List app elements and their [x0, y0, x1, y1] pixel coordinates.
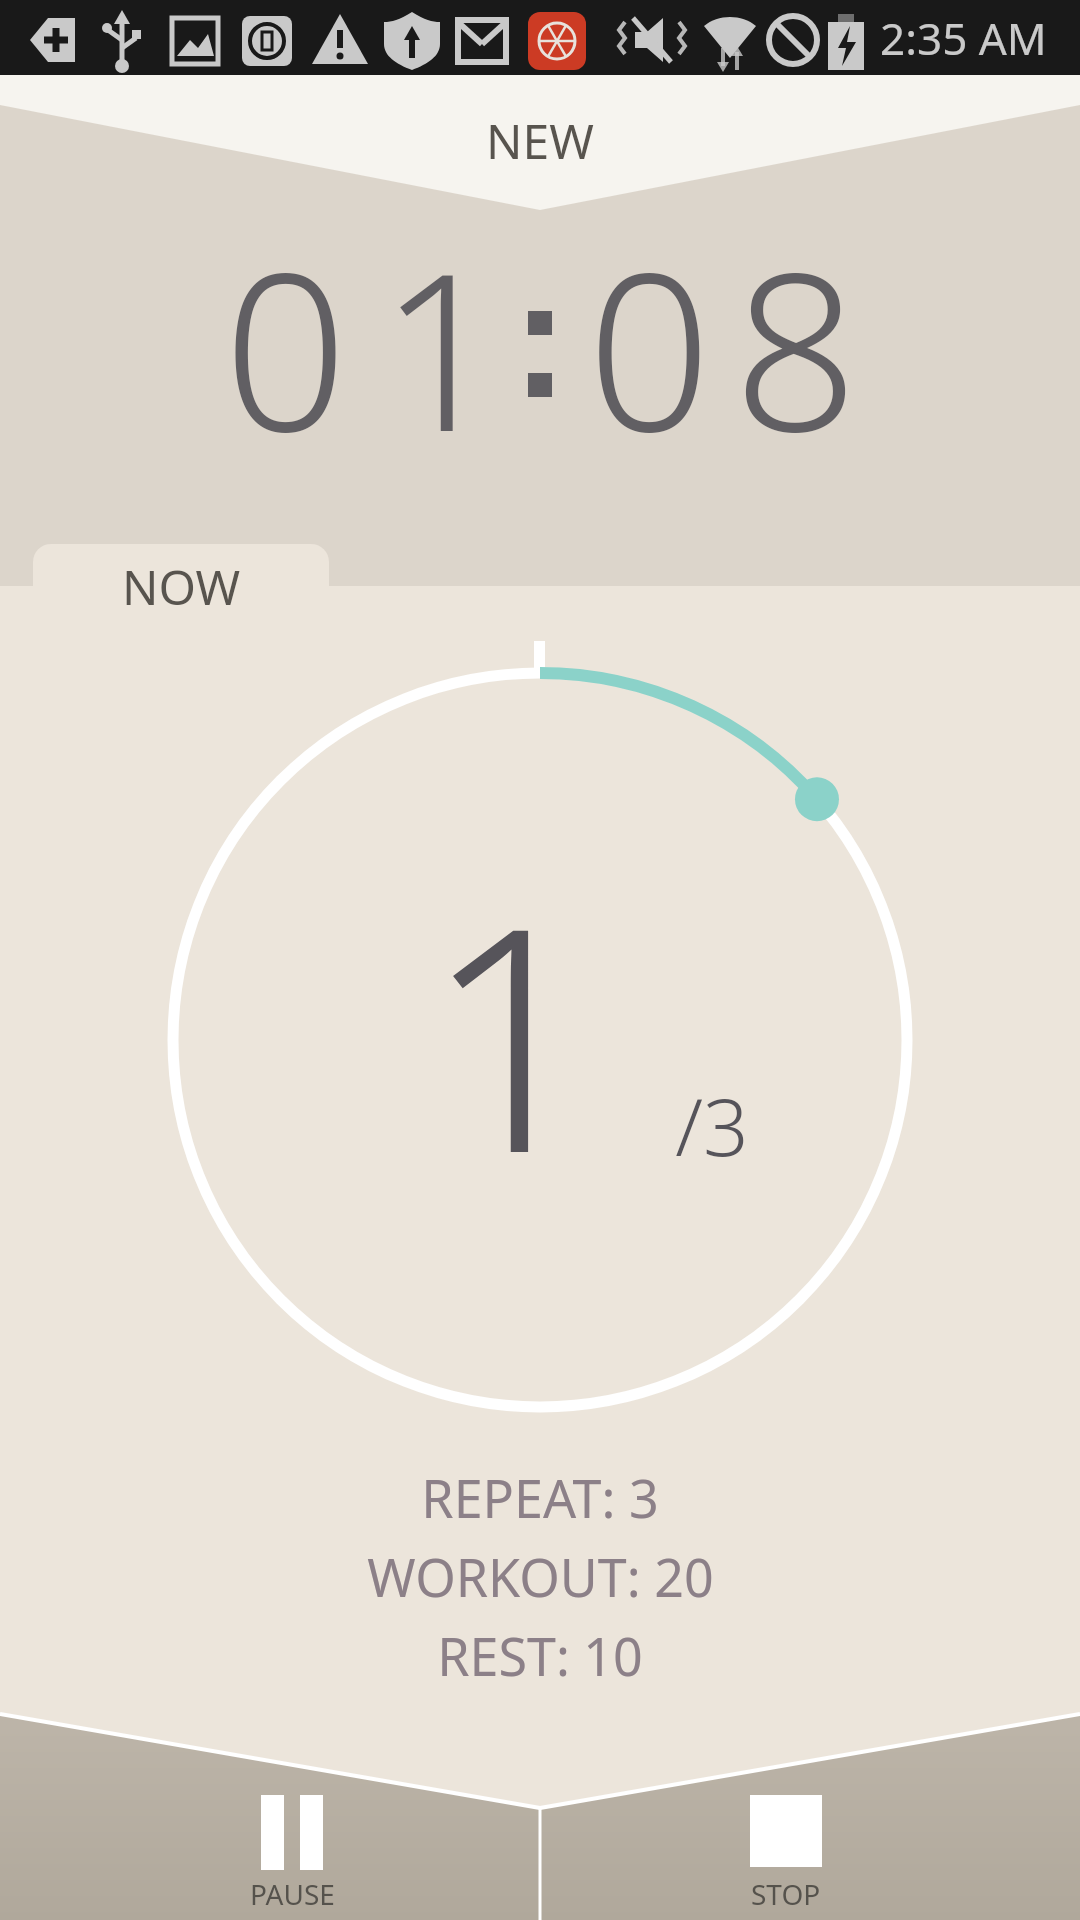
staticText: STOP	[751, 1875, 821, 1907]
staticText: WORKOUT: 20	[367, 1541, 714, 1612]
button[interactable]: NOW	[33, 544, 329, 628]
staticText: PAUSE	[250, 1875, 335, 1907]
staticText: 2:35 AM	[880, 8, 1047, 68]
staticText: REST: 10	[437, 1620, 643, 1691]
staticText: NEW	[486, 108, 594, 173]
staticText: REPEAT: 3	[421, 1462, 659, 1533]
button[interactable]: STOP	[541, 1770, 1080, 1920]
button[interactable]	[0, 75, 1080, 210]
staticText: 0	[223, 198, 348, 495]
staticText: 1	[423, 821, 601, 1243]
staticText: 1	[379, 198, 504, 495]
button[interactable]: PAUSE	[0, 1770, 539, 1920]
staticText: /3	[675, 1070, 749, 1179]
staticText: NOW	[122, 554, 241, 619]
staticText: 08	[587, 198, 880, 495]
